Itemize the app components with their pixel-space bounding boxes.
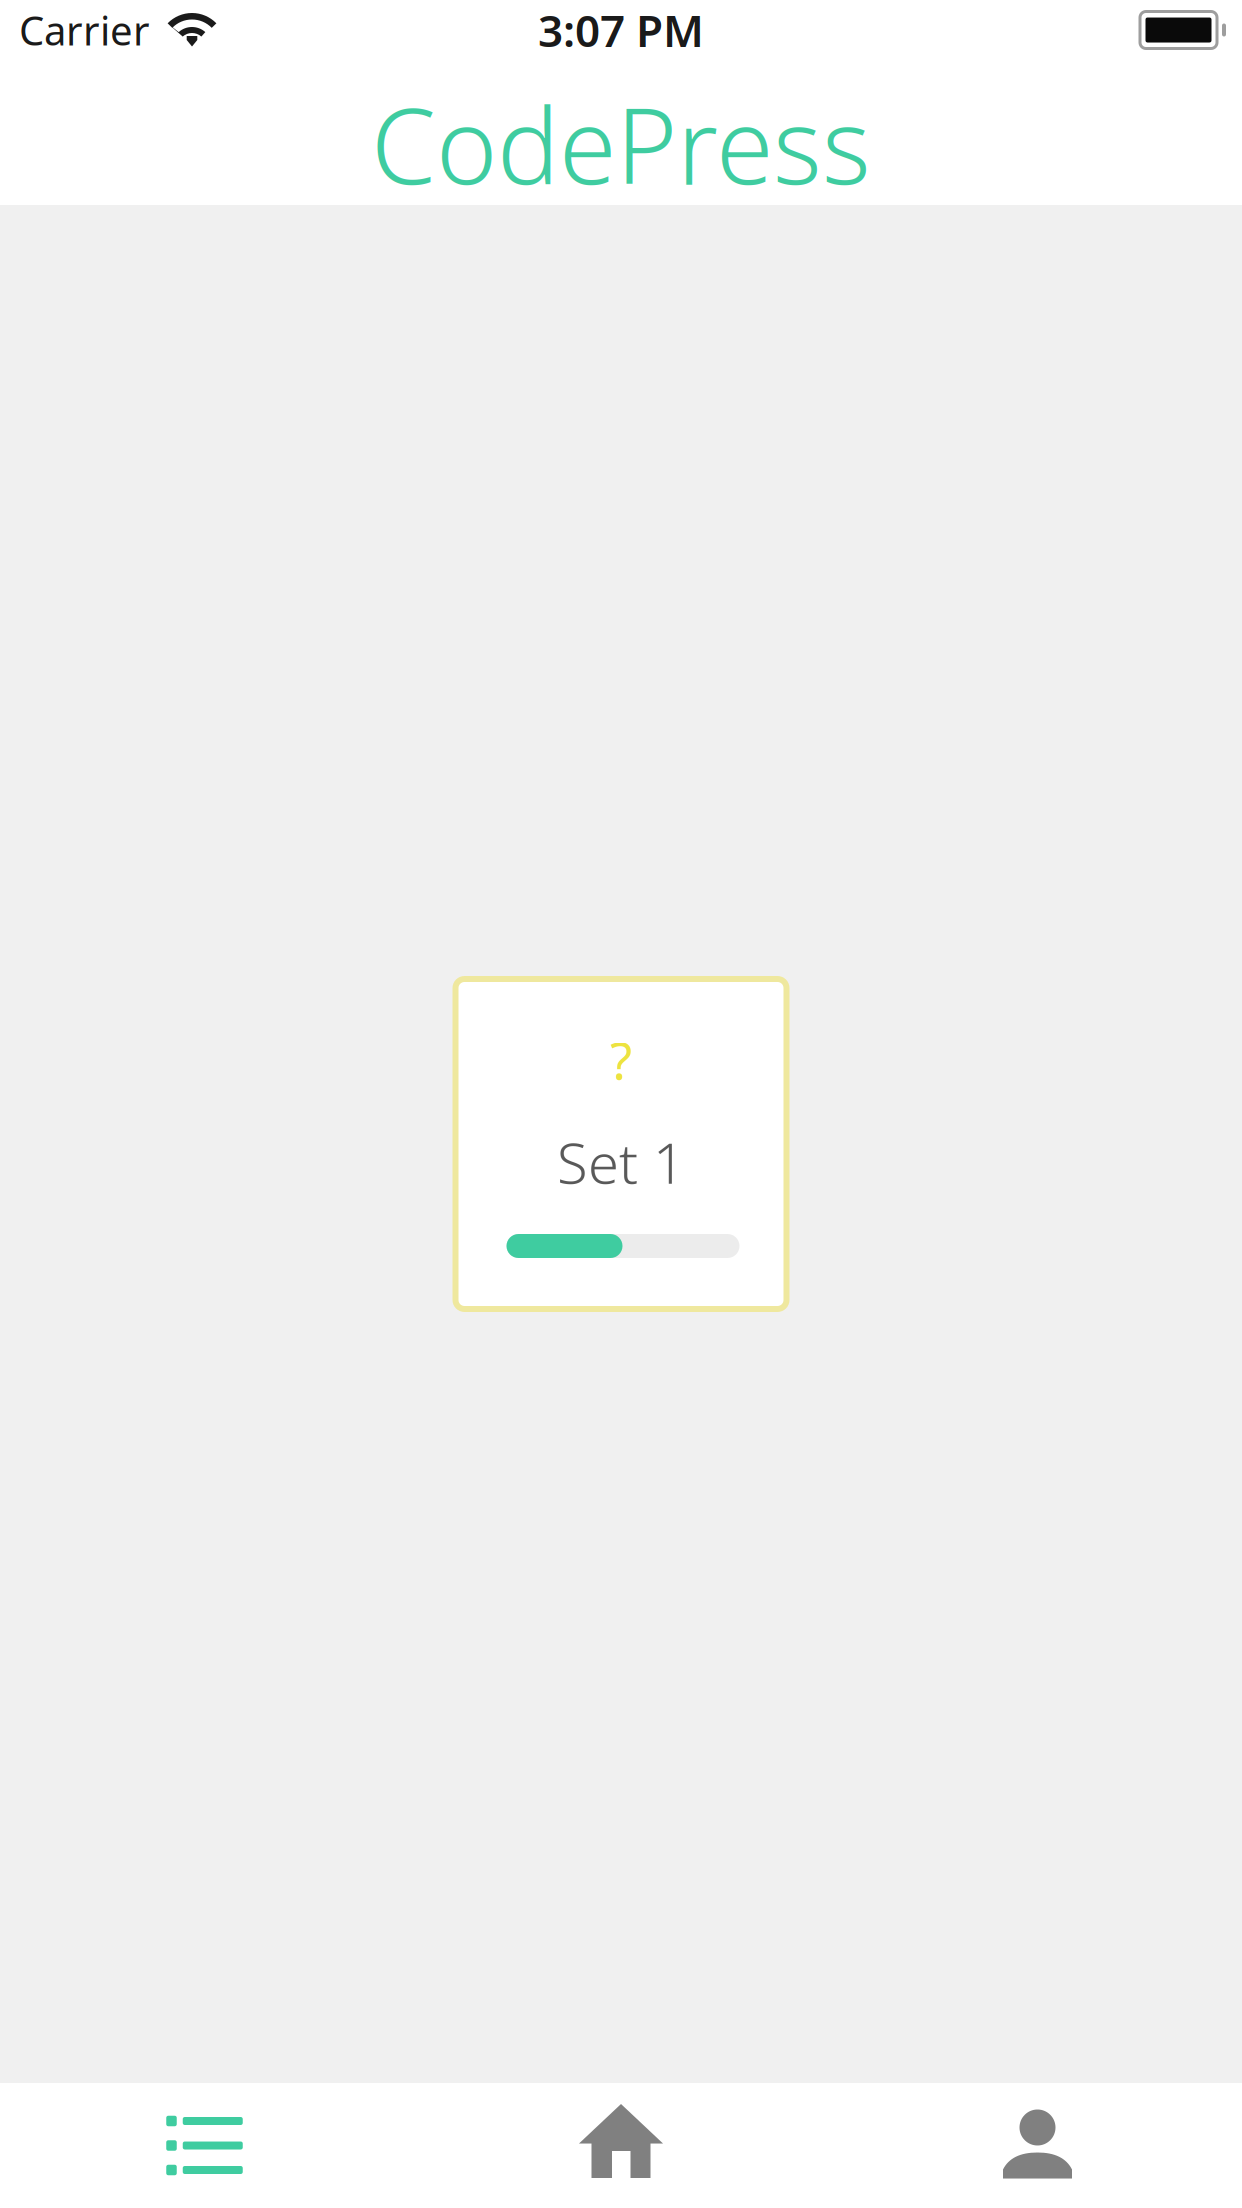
button[interactable]: Profile: [828, 2083, 1242, 2208]
button[interactable]: Sets: [0, 2083, 414, 2208]
button[interactable]: ?: [455, 979, 786, 1309]
staticText: Set 1: [557, 1125, 685, 1199]
staticText: CodePress: [371, 75, 871, 213]
staticText: ?: [610, 1026, 632, 1094]
staticText: 3:07 PM: [538, 1, 704, 59]
staticText: Carrier: [19, 3, 150, 56]
button[interactable]: Home: [414, 2083, 828, 2208]
